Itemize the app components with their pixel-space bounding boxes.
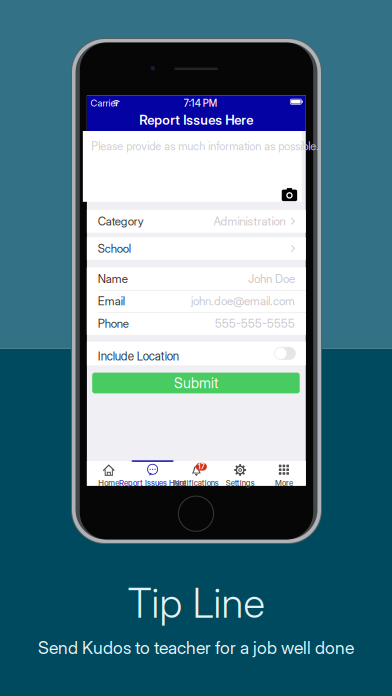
staticText: Settings — [226, 478, 255, 488]
button[interactable] — [262, 461, 306, 486]
staticText: Include Location — [98, 349, 179, 363]
staticText: Carrier — [90, 97, 118, 109]
button[interactable]: Name — [87, 268, 306, 290]
staticText: School — [98, 241, 131, 255]
staticText: 555-555-5555 — [215, 316, 295, 330]
staticText: More — [275, 478, 293, 488]
button[interactable]: Category — [87, 210, 306, 233]
staticText: Report Issues Here — [119, 478, 186, 488]
staticText: Home — [98, 478, 119, 488]
staticText: Send Kudos to teacher for a job well don… — [38, 637, 354, 658]
staticText: John Doe — [248, 272, 295, 286]
staticText: Notifications — [174, 478, 219, 488]
staticText: Administration — [213, 214, 285, 228]
staticText: Email — [98, 294, 125, 308]
staticText: Please provide as much information as po… — [91, 140, 318, 153]
staticText: Submit — [174, 374, 218, 391]
staticText: Phone — [98, 316, 129, 330]
staticText: 7:14 PM — [184, 97, 217, 109]
staticText: Report Issues Here — [139, 112, 253, 128]
button[interactable]: Email — [87, 290, 306, 312]
button[interactable]: Submit — [92, 373, 300, 393]
button[interactable]: School — [87, 237, 306, 260]
staticText: Tip Line — [127, 578, 264, 627]
staticText: john.doe@email.com — [191, 294, 295, 308]
button[interactable] — [131, 461, 174, 486]
button[interactable] — [87, 461, 131, 486]
button[interactable]: 17 — [174, 461, 218, 486]
button[interactable] — [218, 461, 262, 486]
button[interactable]: Include Location — [87, 342, 306, 365]
staticText: Name — [98, 272, 128, 286]
button[interactable]: Phone — [87, 312, 306, 335]
staticText: 17 — [198, 462, 205, 471]
staticText: Category — [98, 214, 144, 228]
